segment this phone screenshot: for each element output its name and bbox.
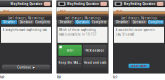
staticText: A wonderful route system is (116, 28, 155, 32)
staticText: (a) (0, 74, 4, 79)
button[interactable]: Complete (148, 20, 164, 24)
staticText: Wayfinding Question (123, 2, 155, 6)
button[interactable]: Question (131, 20, 147, 24)
staticText: (c) (113, 74, 117, 79)
staticText: Keep the Middle (58, 61, 82, 64)
staticText: Describe (60, 20, 72, 24)
staticText: Complete (35, 20, 50, 24)
button[interactable]: Complete (91, 20, 107, 24)
button[interactable]: Enter (58, 45, 82, 56)
button[interactable]: Question (18, 20, 34, 24)
staticText: Level changes, My earnings (64, 16, 100, 20)
staticText: Head and exits (84, 61, 106, 64)
staticText: Describe (116, 20, 128, 24)
button[interactable]: Describe (114, 20, 130, 24)
button[interactable]: Back (115, 2, 122, 6)
staticText: tasks is complete in 10:15? (59, 33, 96, 36)
button[interactable]: Help (157, 2, 163, 6)
button[interactable]: Head and exits (83, 57, 107, 68)
button[interactable]: Next passage (83, 45, 107, 56)
staticText: Question (19, 20, 32, 24)
staticText: Question (132, 20, 145, 24)
staticText: A straightforward wayfinding task (3, 28, 47, 32)
staticText: Start (116, 9, 122, 13)
button[interactable]: Keep the Middle (58, 57, 82, 68)
staticText: Which of these wayfinding (59, 28, 96, 32)
staticText: (b) (56, 74, 60, 79)
staticText: Start (59, 9, 65, 13)
staticText: Continue (17, 66, 31, 69)
staticText: Complete (92, 20, 107, 24)
staticText: Level changes, My earnings (121, 16, 157, 20)
staticText: Enter (67, 49, 74, 52)
button[interactable]: Learn More (128, 64, 149, 68)
staticText: Wayfinding Question (67, 2, 99, 6)
staticText: Wayfinding Question (10, 2, 42, 6)
button[interactable]: Complete (35, 20, 51, 24)
staticText: Learn More (131, 64, 147, 68)
button[interactable]: Help (100, 2, 107, 6)
staticText: Describe (3, 20, 15, 24)
button[interactable]: Describe (1, 20, 17, 24)
staticText: Start (3, 9, 9, 13)
button[interactable]: Help (44, 2, 50, 6)
button[interactable]: Back (58, 2, 66, 6)
button[interactable]: Question (74, 20, 90, 24)
staticText: Level changes, My earnings (8, 16, 44, 20)
button[interactable]: Continue (2, 65, 50, 70)
staticText: Question (76, 20, 89, 24)
staticText: easy. It's a task! (116, 33, 135, 36)
staticText: Complete (148, 20, 163, 24)
staticText: Next passage (85, 49, 104, 52)
staticText: ▶ (33, 66, 35, 69)
button[interactable]: Describe (58, 20, 74, 24)
